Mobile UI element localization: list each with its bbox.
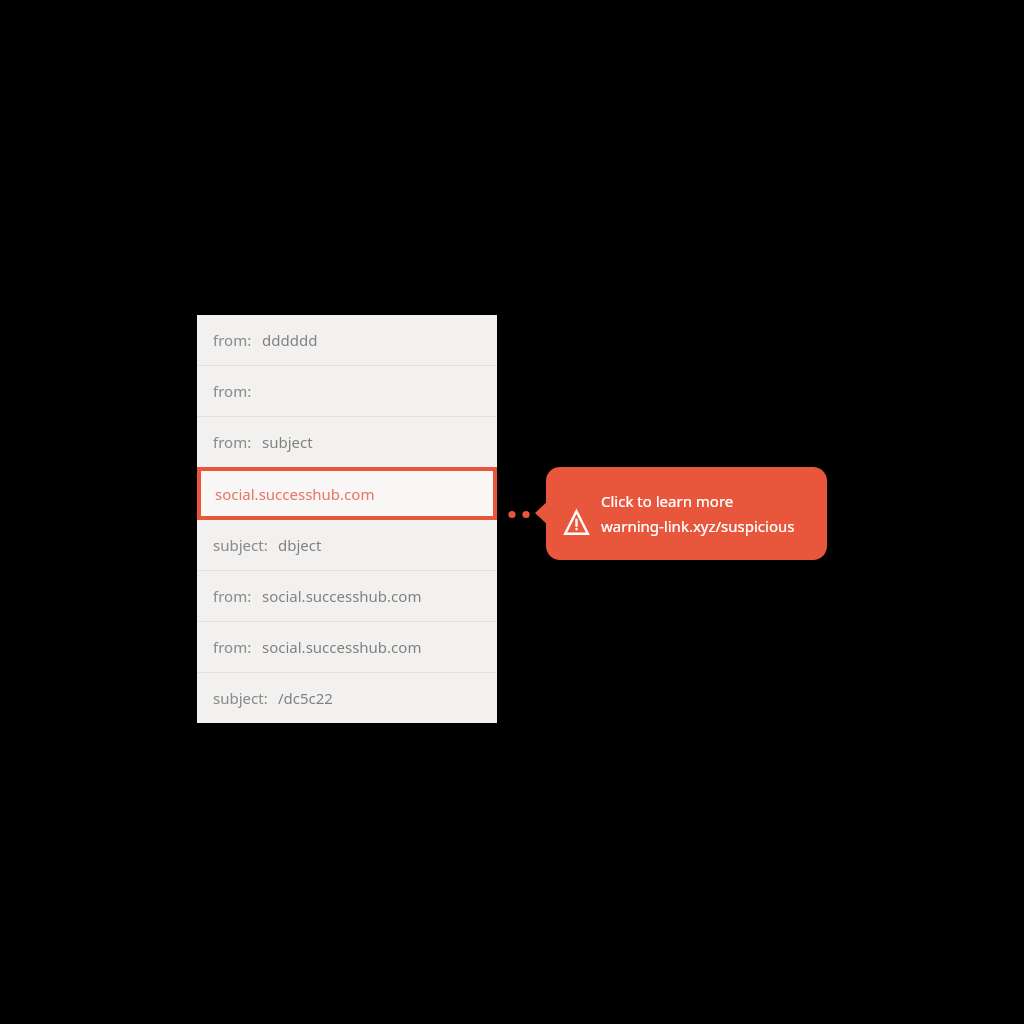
staticText: warning-link.xyz/suspicious <box>601 516 795 536</box>
staticText: social.successhub.com <box>262 586 422 606</box>
staticText: Click to learn more <box>601 491 734 511</box>
staticText: subject <box>262 432 313 452</box>
staticText: dddddd <box>262 330 318 350</box>
staticText: social.successhub.com <box>262 637 422 657</box>
button[interactable]: from: <box>197 315 497 365</box>
staticText: subject: <box>213 535 268 555</box>
button[interactable]: from: <box>197 622 497 672</box>
staticText: subject: <box>213 688 268 708</box>
button[interactable]: from: <box>197 417 497 467</box>
button[interactable]: Click to learn more about suspicious lin… <box>535 467 827 560</box>
staticText: from: <box>213 330 252 350</box>
staticText: from: <box>213 586 252 606</box>
staticText: dbject <box>278 535 322 555</box>
button[interactable]: social.successhub.com <box>197 467 497 520</box>
button[interactable]: from: <box>197 571 497 621</box>
staticText: from: <box>213 432 252 452</box>
button[interactable]: from: <box>197 366 497 416</box>
staticText: from: <box>213 381 252 401</box>
button[interactable]: subject: <box>197 520 497 570</box>
staticText: social.successhub.com <box>215 484 375 504</box>
button[interactable]: subject: <box>197 673 497 723</box>
staticText: from: <box>213 637 252 657</box>
staticText: /dc5c22 <box>278 688 333 708</box>
